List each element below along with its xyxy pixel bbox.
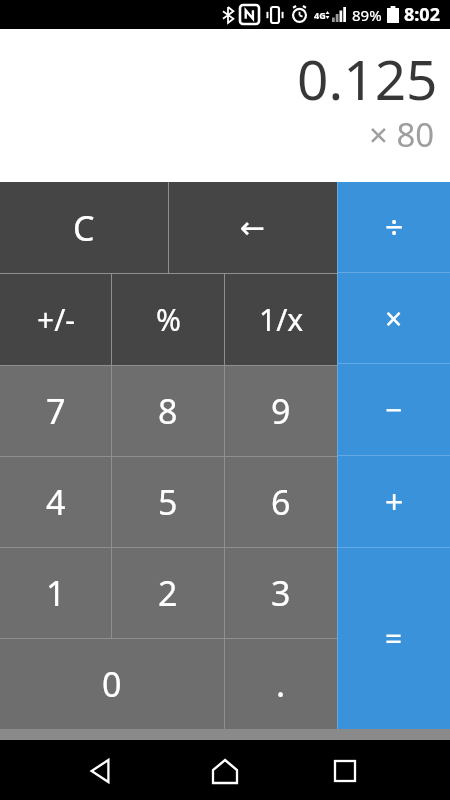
button[interactable]: %: [112, 274, 224, 365]
staticText: 9: [271, 388, 291, 434]
staticText: 7: [46, 388, 66, 434]
button[interactable]: 1: [0, 548, 111, 638]
staticText: 89%: [352, 5, 382, 25]
button[interactable]: +/-: [0, 274, 111, 365]
button[interactable]: 3: [225, 548, 337, 638]
button[interactable]: 4: [0, 457, 111, 547]
staticText: 3: [271, 570, 291, 616]
button[interactable]: −: [338, 364, 450, 455]
button[interactable]: [327, 753, 363, 789]
staticText: 0.125: [297, 41, 438, 116]
staticText: 2: [158, 570, 178, 616]
button[interactable]: +: [338, 456, 450, 547]
staticText: 4: [46, 479, 66, 525]
staticText: .: [276, 661, 286, 707]
staticText: =: [385, 618, 403, 659]
button[interactable]: C: [0, 182, 168, 273]
staticText: 4G: [314, 9, 326, 21]
button[interactable]: ÷: [338, 182, 450, 272]
staticText: 0: [102, 661, 122, 707]
button[interactable]: 6: [225, 457, 337, 547]
button[interactable]: 9: [225, 366, 337, 456]
staticText: 1: [46, 570, 66, 616]
button[interactable]: 1/x: [225, 274, 337, 365]
button[interactable]: ×: [338, 273, 450, 363]
button[interactable]: 7: [0, 366, 111, 456]
button[interactable]: [82, 753, 118, 789]
button[interactable]: [207, 753, 243, 789]
button[interactable]: ←: [169, 182, 337, 273]
button[interactable]: 2: [112, 548, 224, 638]
staticText: +: [385, 480, 404, 524]
staticText: %: [156, 299, 181, 340]
button[interactable]: 8: [112, 366, 224, 456]
staticText: C: [73, 205, 95, 251]
button[interactable]: 5: [112, 457, 224, 547]
staticText: 5: [158, 479, 178, 525]
staticText: ←: [240, 210, 266, 245]
staticText: ×: [385, 298, 403, 339]
staticText: × 80: [369, 112, 435, 157]
staticText: 1/x: [259, 299, 304, 340]
button[interactable]: .: [225, 639, 337, 729]
button[interactable]: 0: [0, 639, 224, 729]
staticText: +/-: [37, 299, 75, 340]
staticText: ÷: [385, 205, 404, 249]
staticText: −: [385, 389, 403, 430]
staticText: 8: [158, 388, 178, 434]
button[interactable]: =: [338, 548, 450, 729]
staticText: 6: [271, 479, 291, 525]
staticText: 8:02: [404, 2, 440, 27]
